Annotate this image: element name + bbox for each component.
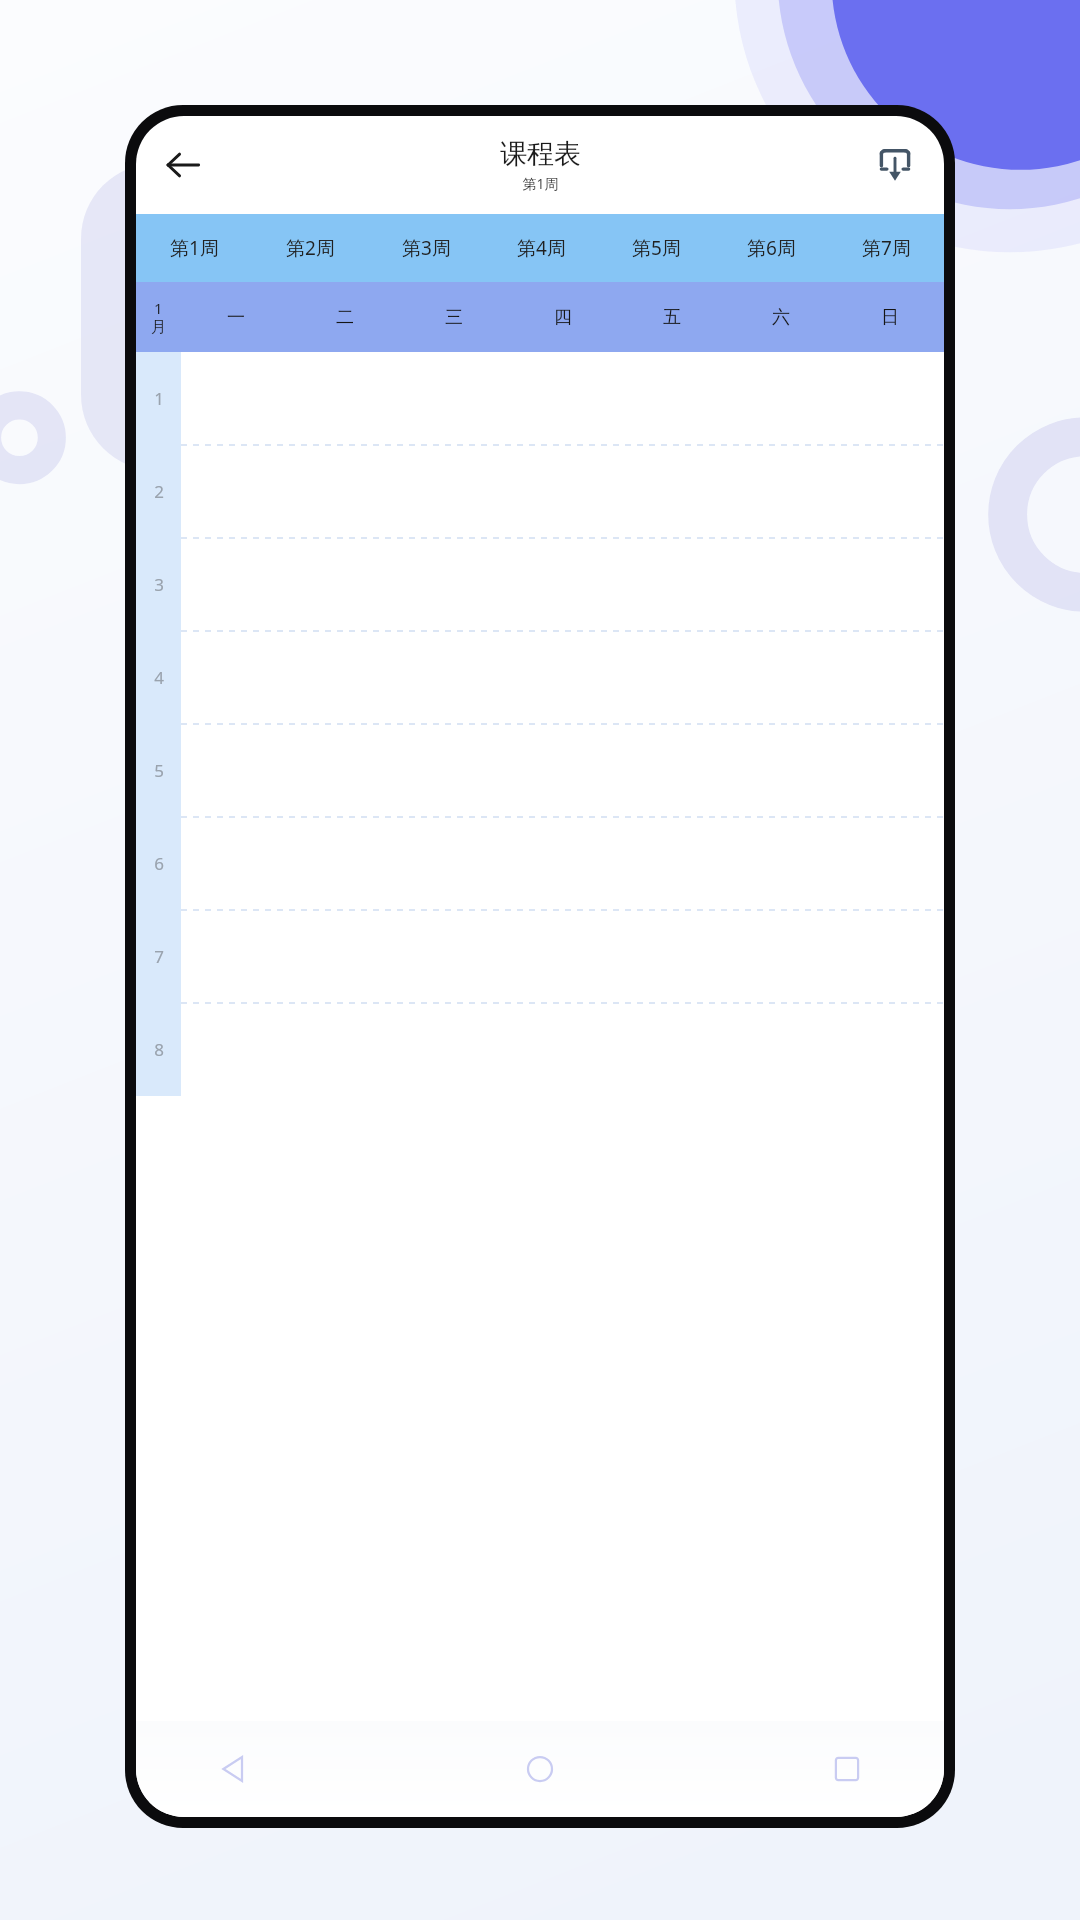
staticText: 8 [154, 1038, 164, 1061]
staticText: 月 [151, 318, 166, 337]
button[interactable]: 第1周 [136, 214, 252, 282]
button[interactable]: 第3周 [368, 214, 484, 282]
staticText: 第1周 [170, 235, 219, 261]
button[interactable] [399, 538, 508, 631]
button[interactable] [508, 631, 617, 724]
staticText: 五 [663, 306, 681, 329]
button[interactable] [181, 910, 290, 1003]
button[interactable]: 二 [290, 282, 399, 352]
staticText: 第2周 [286, 235, 335, 261]
button[interactable] [726, 910, 835, 1003]
staticText: 第5周 [632, 235, 681, 261]
button[interactable]: Back [150, 132, 216, 198]
button[interactable] [508, 724, 617, 817]
button[interactable]: Home [503, 1732, 577, 1806]
button[interactable] [290, 445, 399, 538]
button[interactable] [617, 724, 726, 817]
staticText: 第1周 [522, 174, 559, 193]
button[interactable] [835, 631, 944, 724]
staticText: 第7周 [862, 235, 911, 261]
button[interactable]: Import timetable [862, 132, 928, 198]
staticText: 四 [554, 306, 572, 329]
button[interactable] [617, 817, 726, 910]
button[interactable] [290, 724, 399, 817]
button[interactable]: 六 [726, 282, 835, 352]
button[interactable] [181, 724, 290, 817]
staticText: 7 [154, 945, 164, 968]
button[interactable]: 第7周 [829, 214, 944, 282]
staticText: 第3周 [402, 235, 451, 261]
button[interactable]: 三 [399, 282, 508, 352]
button[interactable] [181, 631, 290, 724]
button[interactable]: 第4周 [484, 214, 599, 282]
staticText: 1 [154, 298, 163, 318]
button[interactable]: 一 [181, 282, 290, 352]
button[interactable] [617, 538, 726, 631]
button[interactable]: 五 [617, 282, 726, 352]
button[interactable] [290, 910, 399, 1003]
staticText: 二 [336, 306, 354, 329]
staticText: 2 [154, 480, 164, 503]
button[interactable] [835, 817, 944, 910]
button[interactable] [290, 538, 399, 631]
button[interactable] [835, 538, 944, 631]
staticText: 3 [154, 573, 164, 596]
button[interactable] [726, 631, 835, 724]
button[interactable] [508, 910, 617, 1003]
button[interactable] [835, 910, 944, 1003]
button[interactable] [508, 445, 617, 538]
button[interactable] [726, 538, 835, 631]
button[interactable] [835, 445, 944, 538]
button[interactable] [726, 445, 835, 538]
button[interactable] [181, 445, 290, 538]
button[interactable]: 日 [835, 282, 944, 352]
button[interactable] [181, 817, 290, 910]
button[interactable] [726, 724, 835, 817]
staticText: 6 [154, 852, 164, 875]
button[interactable]: 第6周 [714, 214, 829, 282]
button[interactable] [399, 724, 508, 817]
staticText: 第4周 [517, 235, 566, 261]
staticText: 1 [154, 387, 164, 410]
button[interactable]: 第5周 [599, 214, 714, 282]
button[interactable] [726, 817, 835, 910]
button[interactable]: 四 [508, 282, 617, 352]
staticText: 日 [881, 306, 899, 329]
staticText: 六 [772, 306, 790, 329]
button[interactable] [617, 910, 726, 1003]
staticText: 5 [154, 759, 164, 782]
button[interactable] [290, 817, 399, 910]
staticText: 一 [227, 306, 245, 329]
button[interactable]: Recents [810, 1732, 884, 1806]
button[interactable]: Back [196, 1732, 270, 1806]
staticText: 课程表 [500, 137, 581, 171]
button[interactable] [399, 817, 508, 910]
button[interactable] [617, 631, 726, 724]
button[interactable] [508, 817, 617, 910]
button[interactable] [290, 631, 399, 724]
button[interactable] [508, 538, 617, 631]
button[interactable] [181, 538, 290, 631]
button[interactable] [617, 445, 726, 538]
button[interactable] [835, 724, 944, 817]
button[interactable]: 第2周 [252, 214, 368, 282]
button[interactable] [399, 445, 508, 538]
staticText: 4 [154, 666, 164, 689]
button[interactable] [399, 631, 508, 724]
staticText: 三 [445, 306, 463, 329]
button[interactable] [399, 910, 508, 1003]
